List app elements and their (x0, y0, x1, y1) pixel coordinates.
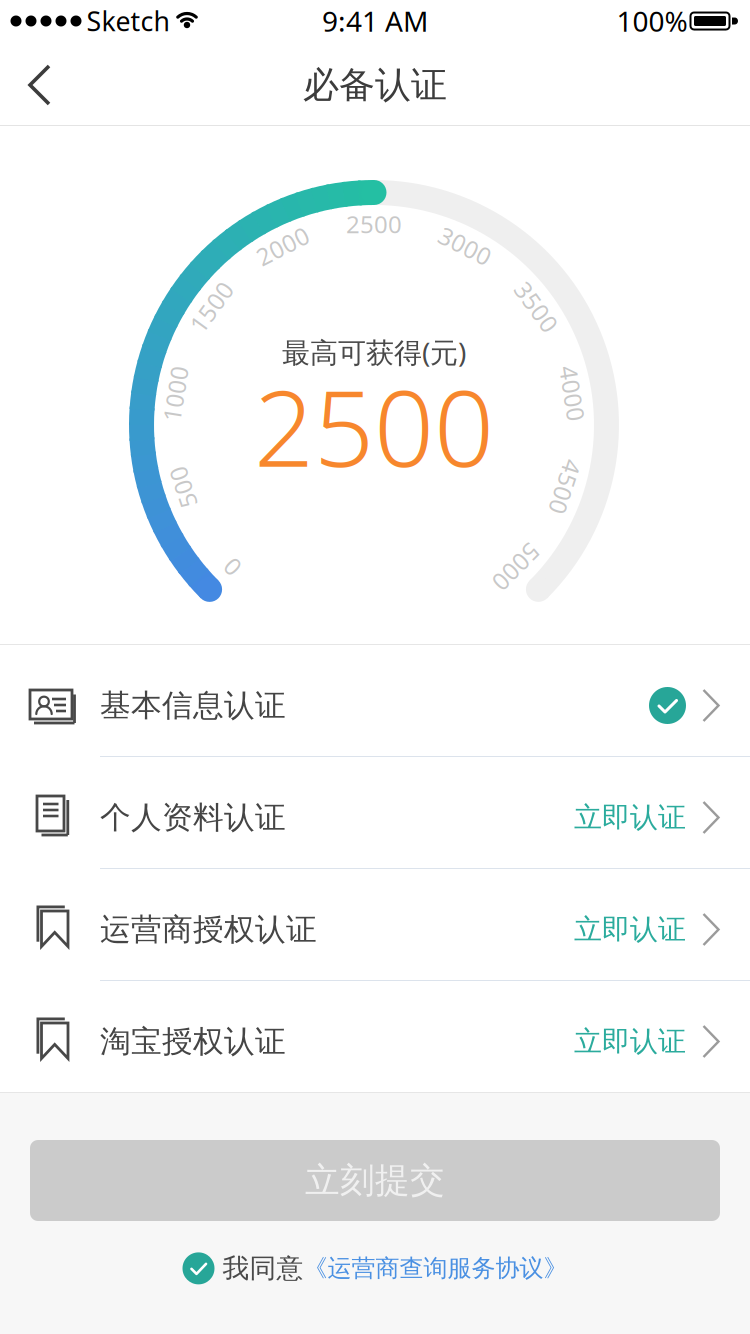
staticText: 4500 (537, 471, 593, 503)
button[interactable]: 立刻提交 (30, 1140, 720, 1221)
staticText: 我同意 (222, 1252, 303, 1285)
staticText: 1500 (183, 291, 239, 323)
staticText: 2500 (254, 356, 494, 496)
staticText: 淘宝授权认证 (100, 1023, 286, 1060)
staticText: Sketch (86, 3, 169, 39)
staticText: 1000 (147, 378, 203, 409)
staticText: 个人资料认证 (100, 799, 286, 836)
button[interactable]: Agree (182, 1252, 214, 1284)
staticText: 3500 (509, 291, 565, 323)
staticText: 《运营商查询服务协议》 (303, 1254, 567, 1283)
staticText: 立即认证 (574, 800, 686, 835)
staticText: 最高可获得(元) (282, 333, 466, 371)
staticText: 2500 (346, 208, 402, 240)
staticText: 立即认证 (574, 1024, 686, 1059)
button[interactable]: 基本信息认证 (0, 645, 750, 756)
button[interactable]: 个人资料认证 (0, 757, 750, 868)
staticText: 0 (225, 551, 239, 583)
staticText: 基本信息认证 (100, 687, 286, 724)
button[interactable]: 运营商授权认证 (0, 869, 750, 980)
staticText: 必备认证 (303, 63, 447, 107)
staticText: 立刻提交 (305, 1159, 445, 1202)
button[interactable]: 淘宝授权认证 (0, 981, 750, 1092)
staticText: 9:41 AM (322, 2, 428, 40)
staticText: 100% (616, 2, 687, 40)
button[interactable]: 《运营商查询服务协议》 (303, 1254, 567, 1283)
button[interactable]: Back (23, 60, 57, 110)
staticText: 立即认证 (574, 912, 686, 947)
staticText: 3000 (437, 230, 493, 262)
staticText: 5000 (488, 551, 544, 583)
staticText: 4000 (544, 378, 600, 409)
staticText: 2000 (255, 230, 311, 262)
staticText: 500 (162, 471, 204, 503)
staticText: 运营商授权认证 (100, 911, 317, 948)
